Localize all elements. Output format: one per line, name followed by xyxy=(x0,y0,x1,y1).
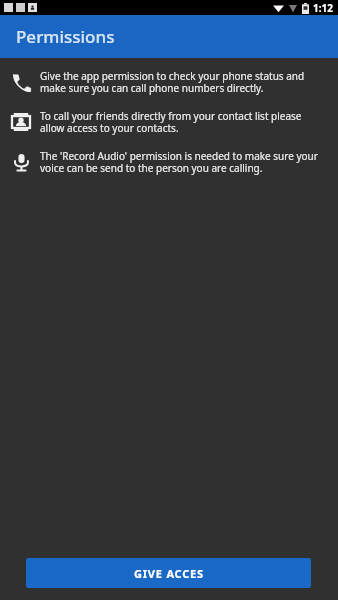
other: Microphone xyxy=(8,149,34,175)
button[interactable]: Contacts xyxy=(0,102,338,142)
button[interactable]: Phone xyxy=(0,62,338,102)
staticText: 1:12 xyxy=(313,1,333,15)
other: Contacts xyxy=(8,109,34,135)
staticText: The 'Record Audio' permission is needed … xyxy=(40,149,324,175)
staticText: Give the app permission to check your ph… xyxy=(40,69,324,95)
staticText: To call your friends directly from your … xyxy=(40,109,324,135)
staticText: GIVE ACCES xyxy=(134,566,204,581)
button[interactable]: GIVE ACCES xyxy=(26,558,311,588)
button[interactable]: Microphone xyxy=(0,142,338,182)
staticText: Permissions xyxy=(16,25,115,48)
other: Phone xyxy=(8,69,34,95)
